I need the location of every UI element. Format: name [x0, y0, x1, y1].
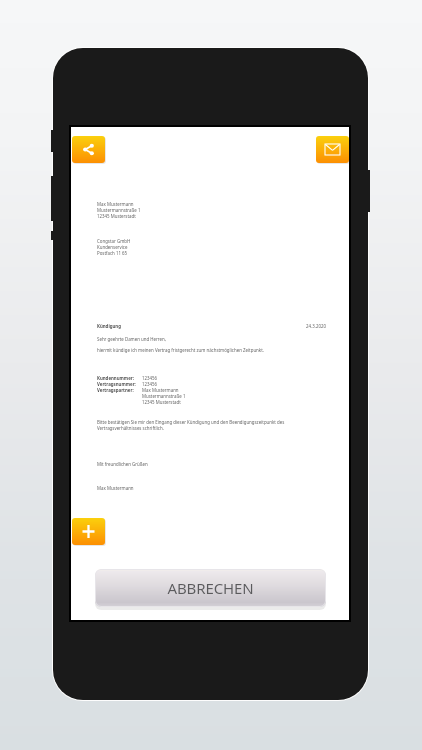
- staticText: Vertragsverhältnisses schriftlich.: [97, 425, 164, 431]
- staticText: Max Mustermann: [97, 485, 134, 491]
- staticText: Kundenservice: [97, 244, 128, 250]
- staticText: Sehr geehrte Damen und Herren,: [97, 336, 166, 342]
- staticText: Vertragsnummer:: [97, 381, 142, 387]
- staticText: 123456: [142, 381, 158, 387]
- button[interactable]: ABBRECHEN: [95, 569, 326, 607]
- staticText: Mit freundlichen Grüßen: [97, 461, 148, 467]
- staticText: Kundennummer:: [97, 375, 142, 381]
- button[interactable]: Email: [316, 136, 349, 163]
- staticText: Bitte bestätigen Sie mir den Eingang die…: [97, 419, 285, 425]
- button[interactable]: Add: [72, 518, 105, 545]
- button[interactable]: Share: [72, 136, 105, 163]
- staticText: Postfach 11 65: [97, 250, 128, 256]
- staticText: Kündigung: [97, 323, 121, 329]
- staticText: hiermit kündige ich meinen Vertrag frist…: [97, 347, 264, 353]
- staticText: Max Mustermann: [142, 387, 179, 393]
- staticText: Max Mustermann: [97, 201, 134, 207]
- staticText: Mustermannstraße 1: [142, 393, 186, 399]
- staticText: Vertragspartner:: [97, 387, 142, 393]
- staticText: 24.3.2020: [306, 323, 326, 329]
- staticText: Congstar GmbH: [97, 238, 131, 244]
- staticText: ABBRECHEN: [167, 578, 254, 598]
- staticText: Mustermannstraße 1: [97, 207, 141, 213]
- staticText: 12345 Musterstadt: [97, 213, 136, 219]
- staticText: 12345 Musterstadt: [142, 399, 181, 405]
- staticText: 123456: [142, 375, 158, 381]
